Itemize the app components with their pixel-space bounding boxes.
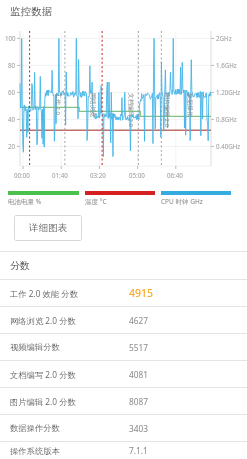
staticText: 80 <box>8 61 16 69</box>
button[interactable]: 数据操作分数 <box>0 415 247 441</box>
staticText: 0.40GHz <box>216 142 241 150</box>
staticText: 分数 <box>10 259 30 272</box>
staticText: 电池电量 % <box>8 197 42 206</box>
staticText: 网络浏览 <box>89 93 97 117</box>
staticText: 4627 <box>129 315 148 326</box>
button[interactable]: 视频编辑分数 <box>0 334 247 360</box>
button[interactable]: 网络浏览 2.0 分数 <box>0 307 247 333</box>
staticText: 100 <box>5 34 16 42</box>
staticText: 视频编辑分数 <box>10 342 60 352</box>
staticText: 60 <box>8 88 16 96</box>
staticText: CPU 时钟 GHz <box>161 197 203 206</box>
button[interactable]: 详细图表 <box>14 215 82 241</box>
staticText: 40 <box>8 115 16 123</box>
staticText: 4915 <box>129 286 154 300</box>
staticText: 8087 <box>129 396 148 407</box>
staticText: 20 <box>8 142 16 150</box>
staticText: 05:00 <box>129 171 145 179</box>
button[interactable]: 文档编写 2.0 分数 <box>0 361 247 387</box>
staticText: 0.8GHz <box>216 115 237 123</box>
staticText: 00:00 <box>14 171 30 179</box>
button[interactable]: 图片编辑 2.0 分数 <box>0 388 247 414</box>
staticText: 5517 <box>129 342 148 353</box>
button[interactable]: 操作系统版本 <box>0 442 247 459</box>
staticText: 7.1.1 <box>129 445 148 456</box>
staticText: 1.6GHz <box>216 61 237 69</box>
staticText: 4081 <box>129 369 148 380</box>
staticText: 01:40 <box>52 171 68 179</box>
staticText: 06:40 <box>167 171 183 179</box>
staticText: 数据操作分数 <box>10 423 60 433</box>
staticText: 2GHz <box>216 34 232 42</box>
staticText: 文档编写 2.0 <box>127 93 135 128</box>
staticText: 数据操作 <box>186 93 194 117</box>
staticText: 图片编辑 2.0 <box>163 93 171 128</box>
staticText: 温度 °C <box>85 197 107 206</box>
staticText: 工作 2.0 <box>54 93 62 116</box>
staticText: 图片编辑 2.0 分数 <box>10 396 76 407</box>
staticText: 操作系统版本 <box>10 446 60 456</box>
button[interactable]: 工作 2.0 效能 分数 <box>0 280 247 306</box>
staticText: 1.20GHz <box>216 88 241 96</box>
staticText: 文档编写 2.0 分数 <box>10 369 76 380</box>
staticText: 详细图表 <box>29 222 67 234</box>
staticText: 3403 <box>129 423 148 434</box>
staticText: 监控数据 <box>10 5 52 18</box>
staticText: 03:20 <box>90 171 106 179</box>
staticText: 网络浏览 2.0 分数 <box>10 315 76 326</box>
staticText: 工作 2.0 效能 分数 <box>10 288 78 299</box>
